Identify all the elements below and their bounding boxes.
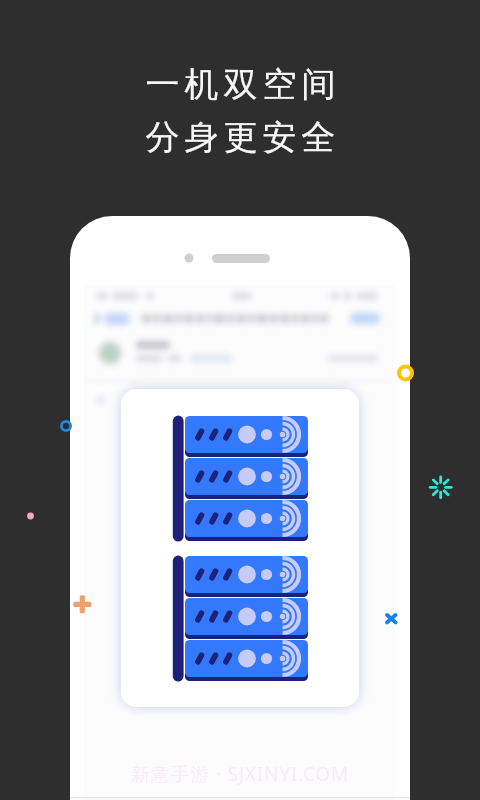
button[interactable]: Server racks illustration bbox=[121, 389, 359, 707]
staticText: 分身更安全 bbox=[143, 116, 338, 159]
staticText: 一机双空间 bbox=[143, 63, 338, 106]
staticText: 新意手游 · SJXINYI.COM bbox=[131, 761, 350, 787]
